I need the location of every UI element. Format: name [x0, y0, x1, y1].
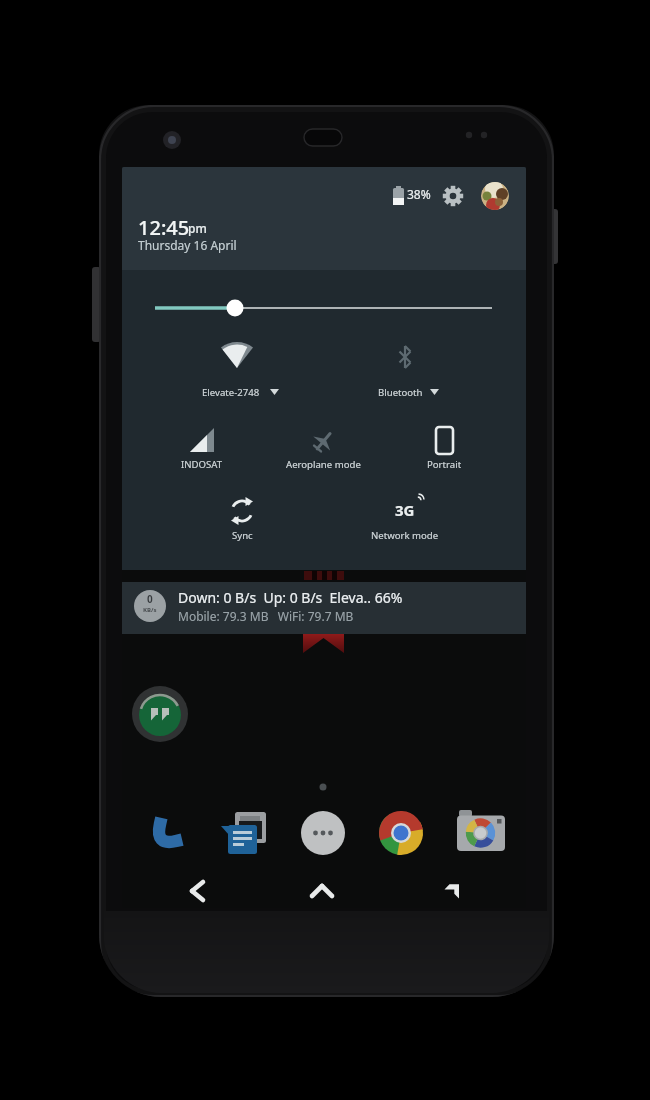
button[interactable]: [132, 686, 188, 742]
button[interactable]: [457, 810, 505, 858]
button[interactable]: [335, 332, 475, 407]
staticText: 3G: [395, 500, 415, 520]
staticText: Portrait: [427, 458, 462, 471]
button[interactable]: [144, 811, 188, 855]
staticText: 38%: [407, 186, 431, 202]
staticText: INDOSAT: [181, 458, 223, 471]
button[interactable]: [222, 811, 266, 855]
staticText: Down: 0 B/s Up: 0 B/s Eleva.. 66%: [178, 588, 403, 607]
staticText: Network mode: [371, 529, 439, 542]
staticText: KB/s: [143, 606, 157, 614]
staticText: 12:45: [138, 214, 190, 241]
staticText: Mobile: 79.3 MB WiFi: 79.7 MB: [178, 608, 354, 624]
button[interactable]: [182, 487, 302, 555]
button[interactable]: [345, 487, 465, 555]
button[interactable]: [432, 871, 472, 908]
button[interactable]: [167, 332, 307, 407]
staticText: pm: [188, 220, 207, 236]
button[interactable]: [142, 415, 262, 485]
button[interactable]: [481, 182, 509, 210]
button[interactable]: [301, 811, 345, 855]
staticText: Sync: [232, 529, 253, 542]
button[interactable]: [379, 811, 423, 855]
button[interactable]: [263, 415, 383, 485]
button[interactable]: [384, 415, 504, 485]
button[interactable]: 0: [122, 582, 526, 634]
button[interactable]: [177, 871, 217, 908]
button[interactable]: [302, 871, 342, 908]
staticText: 0: [147, 592, 153, 605]
staticText: Thursday 16 April: [138, 237, 237, 253]
staticText: Aeroplane mode: [286, 458, 361, 471]
staticText: Bluetooth: [378, 386, 423, 399]
staticText: Elevate-2748: [202, 386, 260, 399]
